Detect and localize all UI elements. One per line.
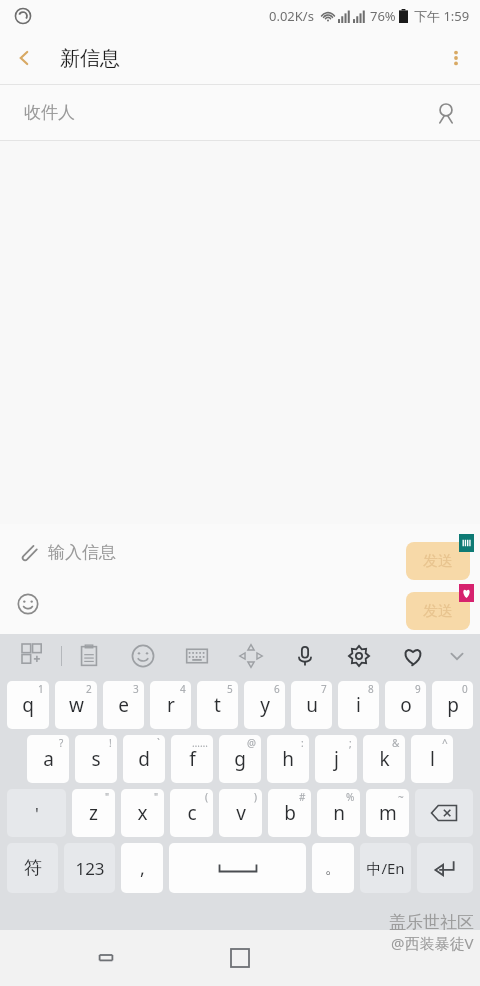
button[interactable]: Attach [8,532,48,572]
staticText: ; [349,736,352,750]
staticText: t [214,692,221,718]
staticText: # [299,790,306,804]
button[interactable]: Emoji [116,634,170,678]
button[interactable]: Sticker [386,634,440,678]
staticText: m [379,800,397,826]
button[interactable]: h [267,735,309,783]
staticText: i [356,692,361,718]
button[interactable]: g [219,735,261,783]
staticText: ^ [442,736,448,750]
staticText: r [167,692,175,718]
staticText: 盖乐世社区 [389,912,474,933]
button[interactable]: , [121,843,163,893]
button[interactable]: e [103,681,144,729]
button[interactable]: t [197,681,238,729]
button[interactable]: More options [432,34,480,82]
button[interactable]: Emoji [8,584,48,624]
staticText: x [137,800,148,826]
staticText: 收件人 [24,102,75,123]
staticText: ' [35,802,39,825]
staticText: l [430,746,435,772]
button[interactable]: 。 [312,843,354,893]
button[interactable]: x [121,789,164,837]
button[interactable]: 符 [7,843,58,893]
button[interactable]: Home [212,930,268,986]
staticText: 0 [462,682,468,696]
staticText: u [306,692,318,718]
button[interactable]: j [315,735,357,783]
button[interactable]: Settings [332,634,386,678]
button[interactable]: 收件人 [0,85,480,140]
staticText: " [154,790,159,804]
button[interactable]: Clipboard [62,634,116,678]
staticText: 0.02K/s [269,7,314,25]
button[interactable]: Enter [417,843,473,893]
staticText: " [105,790,110,804]
staticText: g [234,746,246,772]
staticText: 9 [415,682,421,696]
button[interactable]: Collapse [440,634,474,678]
staticText: p [447,692,459,718]
staticText: v [236,800,246,826]
staticText: 发送 [423,552,453,571]
button[interactable]: Cursor control [224,634,278,678]
button[interactable]: c [170,789,213,837]
button[interactable]: Add contact [424,91,468,135]
staticText: 8 [368,682,374,696]
button[interactable]: a [27,735,69,783]
staticText: 新信息 [60,46,120,71]
button[interactable]: l [411,735,453,783]
button[interactable]: 123 [64,843,115,893]
staticText: 下午 1:59 [414,7,470,25]
staticText: a [43,746,54,772]
button[interactable]: f [171,735,213,783]
staticText: : [301,736,304,750]
button[interactable]: Keyboard [170,634,224,678]
staticText: 4 [180,682,186,696]
button[interactable]: d [123,735,165,783]
staticText: 输入信息 [48,542,116,563]
staticText: , [140,856,145,881]
button[interactable]: Voice input [278,634,332,678]
staticText: 7 [321,682,327,696]
button[interactable]: v [219,789,262,837]
staticText: @西装暴徒V [391,933,474,953]
button[interactable]: i [338,681,379,729]
button[interactable]: m [366,789,409,837]
staticText: c [187,800,197,826]
button[interactable]: Back [346,930,402,986]
button[interactable]: Apps [6,634,61,678]
staticText: s [91,746,101,772]
staticText: 3 [133,682,139,696]
staticText: …… [192,736,208,750]
button[interactable]: z [72,789,115,837]
staticText: z [89,800,98,826]
staticText: 发送 [423,602,453,621]
button[interactable]: k [363,735,405,783]
button[interactable]: r [150,681,191,729]
staticText: % [346,790,355,804]
button[interactable]: y [244,681,285,729]
button[interactable]: b [268,789,311,837]
button[interactable]: 发送 [406,542,470,580]
button[interactable]: Recents [78,930,134,986]
button[interactable]: Space [169,843,306,893]
button[interactable]: Back [0,34,48,82]
button[interactable]: w [55,681,97,729]
staticText: j [334,746,339,772]
button[interactable]: p [432,681,473,729]
button[interactable]: Backspace [415,789,473,837]
staticText: f [189,746,196,772]
button[interactable]: s [75,735,117,783]
button[interactable]: ' [7,789,66,837]
button[interactable]: 发送 [406,592,470,630]
button[interactable]: n [317,789,360,837]
staticText: 123 [75,857,105,880]
staticText: ? [59,736,64,750]
button[interactable]: 中/En [360,843,411,893]
button[interactable]: o [385,681,426,729]
button[interactable]: u [291,681,332,729]
staticText: & [392,736,400,750]
button[interactable]: q [7,681,49,729]
staticText: y [260,692,270,718]
